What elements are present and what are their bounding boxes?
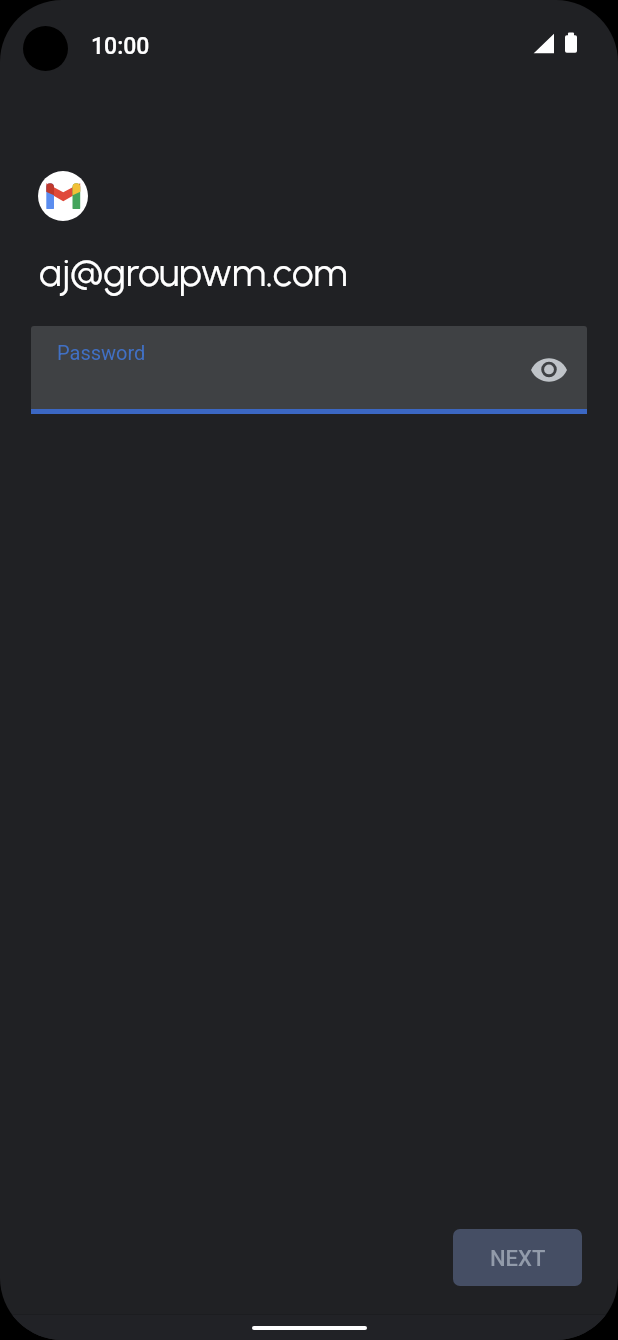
other: Gmail: [38, 171, 88, 221]
staticText: Password: [57, 341, 146, 364]
staticText: NEXT: [490, 1246, 546, 1272]
staticText: 10:00: [91, 33, 150, 60]
staticText: aj@groupwm.com: [39, 250, 348, 296]
button[interactable]: Password: [31, 326, 587, 414]
button[interactable]: Show password: [525, 346, 573, 394]
button[interactable]: NEXT: [453, 1229, 582, 1286]
